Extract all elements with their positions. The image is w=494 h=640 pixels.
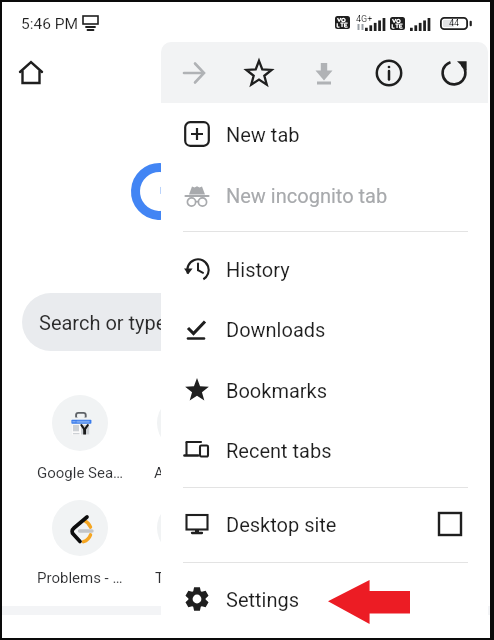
button[interactable]: Download: [308, 57, 340, 89]
button[interactable]: Downloads: [161, 301, 488, 357]
staticText: Recent tabs: [226, 439, 332, 462]
staticText: Downloads: [226, 318, 326, 341]
button[interactable]: Settings: [161, 571, 488, 627]
staticText: Bookmarks: [226, 379, 328, 402]
staticText: Tutorial…: [155, 569, 216, 587]
button[interactable]: Recent tabs: [161, 422, 488, 478]
button[interactable]: Android…: [135, 395, 235, 482]
button[interactable]: Home: [18, 60, 44, 86]
button[interactable]: Bookmarks: [161, 362, 488, 418]
button[interactable]: Bookmark: [243, 57, 275, 89]
staticText: Search or type URL: [39, 311, 208, 334]
button[interactable]: Search or type URL: [22, 293, 322, 351]
staticText: 5:46 PM: [21, 15, 79, 33]
staticText: Google Sea…: [37, 464, 124, 482]
button[interactable]: New tab: [161, 106, 488, 162]
staticText: Android…: [154, 464, 217, 482]
staticText: New tab: [226, 123, 300, 146]
staticText: 4G+: [356, 14, 373, 25]
button[interactable]: Google Sea…: [30, 395, 130, 482]
button[interactable]: Forward: [178, 57, 210, 89]
button[interactable]: Page info: [373, 57, 405, 89]
staticText: Settings: [226, 588, 300, 611]
staticText: New incognito tab: [226, 184, 388, 207]
button[interactable]: New incognito tab: [161, 167, 488, 223]
button[interactable]: Desktop site: [161, 496, 488, 552]
button[interactable]: Tutorial…: [135, 500, 235, 587]
staticText: 44: [449, 18, 460, 29]
staticText: Problems - …: [37, 569, 123, 587]
button[interactable]: Problems - …: [30, 500, 130, 587]
button[interactable]: Reload: [438, 57, 470, 89]
staticText: Desktop site: [226, 513, 337, 536]
staticText: History: [226, 258, 290, 281]
button[interactable]: History: [161, 241, 488, 297]
